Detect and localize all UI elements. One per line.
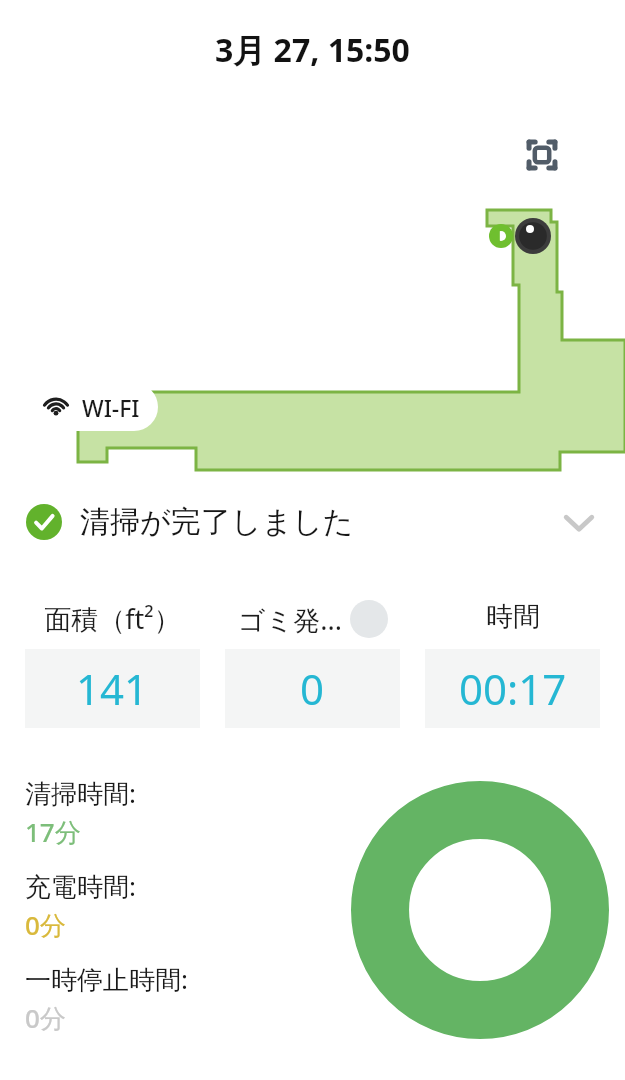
button[interactable]: Help [350, 600, 388, 638]
staticText: 0分 [25, 907, 66, 943]
staticText: 141 [76, 660, 149, 717]
staticText: 清掃が完了しました [80, 503, 354, 541]
staticText: 時間 [486, 600, 540, 634]
staticText: 充電時間: [25, 868, 136, 904]
button[interactable]: 141 [25, 649, 200, 728]
staticText: WI-FI [82, 392, 140, 423]
staticText: 面積（ft²） [44, 600, 181, 637]
staticText: ゴミ発... [238, 601, 342, 638]
staticText: 3月 27, 15:50 [215, 28, 410, 72]
button[interactable]: Fullscreen [502, 115, 581, 194]
staticText: 0分 [25, 1000, 66, 1036]
staticText: 清掃時間: [25, 775, 136, 811]
staticText: 00:17 [459, 660, 567, 717]
button[interactable]: 0 [225, 649, 400, 728]
button[interactable]: WI-FI [24, 383, 158, 431]
button[interactable]: 00:17 [425, 649, 600, 728]
other: Rotate [489, 224, 513, 248]
staticText: 17分 [25, 814, 81, 850]
staticText: 0 [300, 660, 325, 717]
button[interactable]: 清掃が完了しました [0, 478, 625, 566]
staticText: 一時停止時間: [25, 961, 188, 997]
